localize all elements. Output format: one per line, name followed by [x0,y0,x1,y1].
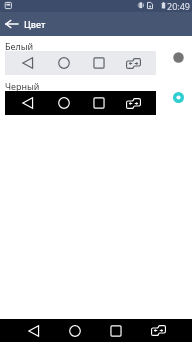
staticText: Черный [5,80,40,92]
staticText: Цвет [24,18,46,30]
button[interactable]: Черный [0,76,192,116]
button[interactable]: Домой [54,319,95,342]
button[interactable]: Поворот экрана [137,319,179,342]
staticText: Белый [5,40,34,52]
button[interactable]: Назад [13,319,54,342]
button[interactable]: Обзор [95,319,137,342]
button[interactable]: Назад [0,12,24,36]
button[interactable]: Белый [0,36,192,76]
staticText: 20:49 [167,0,191,12]
